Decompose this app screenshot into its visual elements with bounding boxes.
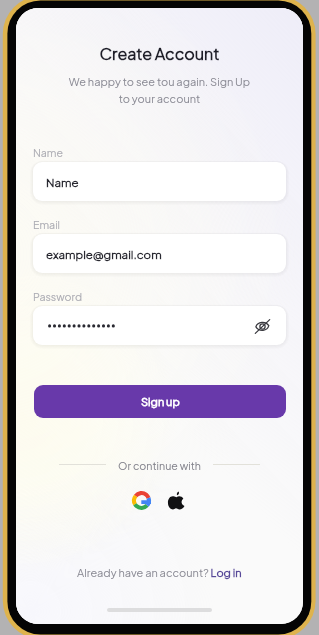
staticText: Create Account (16, 43, 303, 63)
staticText: Name (33, 146, 63, 159)
staticText: Or continue with (16, 459, 303, 472)
button[interactable]: Sign up (34, 385, 286, 418)
button[interactable]: Already have an account? Log in (77, 566, 242, 580)
staticText: Password (33, 290, 83, 303)
button[interactable]: example@gmail.com (33, 234, 286, 273)
staticText: Sign up (141, 395, 180, 409)
staticText: Already have an account? Log in (77, 566, 242, 580)
staticText: Email (33, 218, 61, 231)
button[interactable]: Sign up with Apple (163, 487, 189, 513)
button[interactable]: Name (33, 162, 286, 201)
staticText: Name (46, 175, 79, 189)
button[interactable]: Show password (252, 316, 272, 336)
staticText: We happy to see tou again. Sign Up to yo… (16, 75, 303, 106)
staticText: example@gmail.com (46, 247, 162, 261)
button[interactable]: Sign up with Google (128, 487, 154, 513)
button[interactable]: Show password (33, 306, 286, 345)
